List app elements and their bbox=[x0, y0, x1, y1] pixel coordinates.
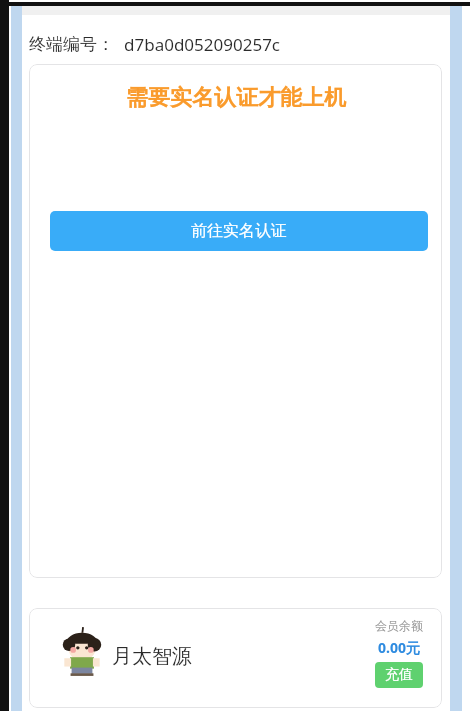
staticText: 终端编号： bbox=[29, 34, 114, 55]
button[interactable]: 前往实名认证 bbox=[50, 211, 428, 251]
staticText: 月太智源 bbox=[112, 644, 192, 669]
staticText: 前往实名认证 bbox=[191, 221, 287, 241]
staticText: 需要实名认证才能上机 bbox=[126, 84, 346, 112]
staticText: 充值 bbox=[385, 666, 413, 684]
staticText: 会员余额 bbox=[375, 618, 423, 633]
staticText: d7ba0d052090257c bbox=[124, 33, 281, 56]
button[interactable]: 充值 bbox=[375, 662, 423, 688]
staticText: 0.00元 bbox=[378, 638, 420, 657]
